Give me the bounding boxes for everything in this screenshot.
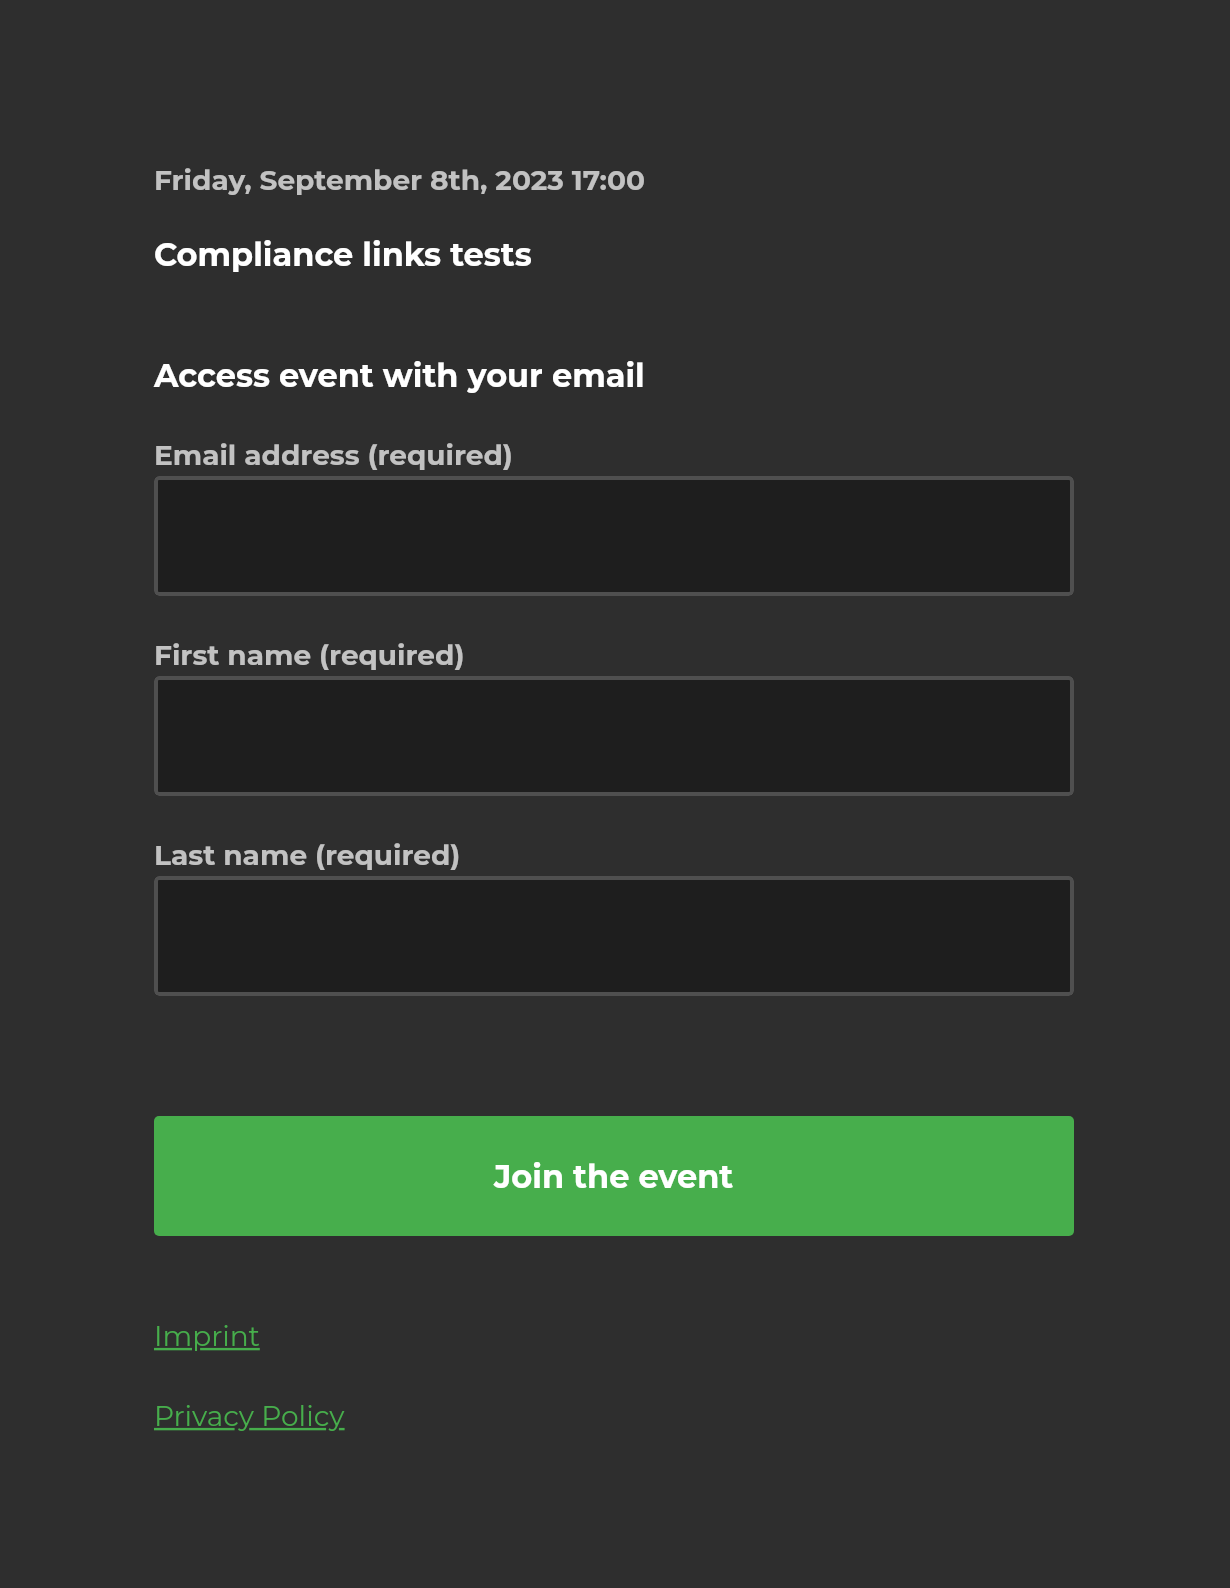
button[interactable]: Last name (required) (154, 876, 1074, 996)
staticText: Last name (required) (154, 838, 461, 872)
button[interactable]: Imprint (154, 1319, 264, 1353)
button[interactable]: Email address (required) (154, 476, 1074, 596)
staticText: Friday, September 8th, 2023 17:00 (154, 163, 645, 197)
staticText: Imprint (154, 1319, 260, 1353)
button[interactable]: Privacy Policy (154, 1399, 349, 1433)
staticText: First name (required) (154, 638, 465, 672)
staticText: Privacy Policy (154, 1399, 345, 1433)
staticText: Compliance links tests (154, 235, 532, 274)
staticText: Email address (required) (154, 438, 513, 472)
staticText: Access event with your email (154, 356, 645, 395)
button[interactable]: Join the event (154, 1116, 1074, 1236)
staticText: Join the event (494, 1157, 734, 1196)
button[interactable]: First name (required) (154, 676, 1074, 796)
